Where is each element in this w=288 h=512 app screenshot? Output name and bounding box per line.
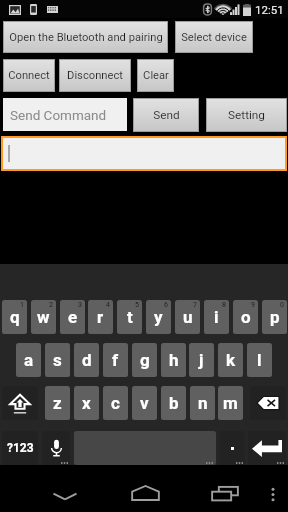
staticText: 0 bbox=[280, 301, 284, 309]
button[interactable]: v bbox=[132, 386, 157, 420]
button[interactable]: w bbox=[31, 300, 56, 334]
button[interactable]: Send Command bbox=[3, 98, 127, 131]
staticText: x bbox=[82, 393, 91, 413]
button[interactable]: x bbox=[74, 386, 99, 420]
button[interactable]: Enter bbox=[248, 431, 286, 465]
staticText: Send bbox=[153, 108, 180, 122]
staticText: t bbox=[127, 307, 133, 327]
button[interactable]: n bbox=[190, 386, 215, 420]
button[interactable]: Home bbox=[121, 480, 169, 506]
button[interactable]: Voice input bbox=[42, 431, 70, 465]
staticText: c bbox=[111, 393, 120, 413]
button[interactable]: Shift bbox=[2, 386, 38, 420]
button[interactable]: b bbox=[161, 386, 186, 420]
button[interactable]: t bbox=[117, 300, 142, 334]
button[interactable]: y bbox=[146, 300, 171, 334]
button[interactable]: Backspace bbox=[250, 386, 286, 420]
staticText: q bbox=[10, 307, 20, 327]
button[interactable]: More options bbox=[259, 482, 286, 506]
staticText: 8 bbox=[222, 301, 226, 309]
staticText: ?123 bbox=[7, 441, 34, 455]
staticText: n bbox=[198, 393, 208, 413]
button[interactable]: s bbox=[45, 343, 70, 377]
staticText: 6 bbox=[164, 301, 168, 309]
staticText: s bbox=[53, 350, 62, 370]
staticText: 2 bbox=[49, 301, 53, 309]
staticText: 5 bbox=[135, 301, 139, 309]
button[interactable]: r bbox=[88, 300, 113, 334]
button[interactable]: j bbox=[189, 343, 214, 377]
staticText: Open the Bluetooth and pairing bbox=[9, 31, 163, 44]
button[interactable]: c bbox=[103, 386, 128, 420]
button[interactable]: a bbox=[16, 343, 41, 377]
staticText: v bbox=[140, 393, 149, 413]
button[interactable]: m bbox=[218, 386, 243, 420]
button[interactable]: e bbox=[60, 300, 85, 334]
staticText: 1 bbox=[20, 301, 24, 309]
staticText: e bbox=[68, 307, 78, 327]
button[interactable]: Send bbox=[133, 98, 199, 132]
staticText: w bbox=[37, 307, 50, 327]
button[interactable] bbox=[219, 431, 245, 465]
staticText: b bbox=[169, 393, 179, 413]
staticText: Clear bbox=[143, 69, 169, 82]
staticText: r bbox=[97, 307, 104, 327]
staticText: u bbox=[183, 307, 193, 327]
staticText: l bbox=[257, 350, 262, 370]
staticText: f bbox=[112, 350, 119, 370]
button[interactable]: d bbox=[74, 343, 99, 377]
button[interactable]: Recent apps bbox=[201, 480, 249, 506]
button[interactable]: Hide keyboard bbox=[41, 483, 89, 509]
staticText: 7 bbox=[193, 301, 197, 309]
button[interactable]: g bbox=[132, 343, 157, 377]
staticText: 4 bbox=[106, 301, 110, 309]
button[interactable]: l bbox=[247, 343, 272, 377]
staticText: i bbox=[214, 307, 219, 327]
button[interactable]: u bbox=[175, 300, 200, 334]
staticText: j bbox=[199, 350, 204, 370]
button[interactable]: o bbox=[233, 300, 258, 334]
staticText: p bbox=[270, 307, 280, 327]
staticText: d bbox=[82, 350, 92, 370]
staticText: k bbox=[226, 350, 236, 370]
staticText: m bbox=[223, 393, 238, 413]
button[interactable]: k bbox=[218, 343, 243, 377]
button[interactable]: ?123 bbox=[2, 431, 38, 465]
staticText: Select device bbox=[181, 31, 247, 44]
button[interactable]: i bbox=[204, 300, 229, 334]
staticText: Send Command bbox=[10, 107, 107, 123]
button[interactable]: z bbox=[45, 386, 70, 420]
button[interactable]: Select device bbox=[175, 21, 253, 53]
button[interactable]: q bbox=[2, 300, 27, 334]
staticText: o bbox=[241, 307, 251, 327]
button[interactable]: h bbox=[161, 343, 186, 377]
button[interactable]: Clear bbox=[137, 59, 174, 92]
button[interactable] bbox=[1, 136, 287, 171]
staticText: Disconnect bbox=[67, 69, 123, 82]
button[interactable]: Open the Bluetooth and pairing bbox=[3, 21, 168, 53]
staticText: 3 bbox=[78, 301, 82, 309]
staticText: g bbox=[140, 350, 150, 370]
staticText: y bbox=[154, 307, 163, 327]
staticText: a bbox=[24, 350, 34, 370]
button[interactable]: Connect bbox=[3, 59, 55, 92]
staticText: Connect bbox=[8, 69, 50, 82]
button[interactable]: Setting bbox=[206, 98, 287, 132]
button[interactable]: f bbox=[103, 343, 128, 377]
staticText: 12:51 bbox=[255, 3, 284, 16]
button[interactable]: p bbox=[262, 300, 287, 334]
staticText: h bbox=[169, 350, 179, 370]
staticText: z bbox=[53, 393, 62, 413]
staticText: 9 bbox=[251, 301, 255, 309]
staticText: Setting bbox=[228, 108, 265, 122]
button[interactable]: Disconnect bbox=[59, 59, 131, 92]
